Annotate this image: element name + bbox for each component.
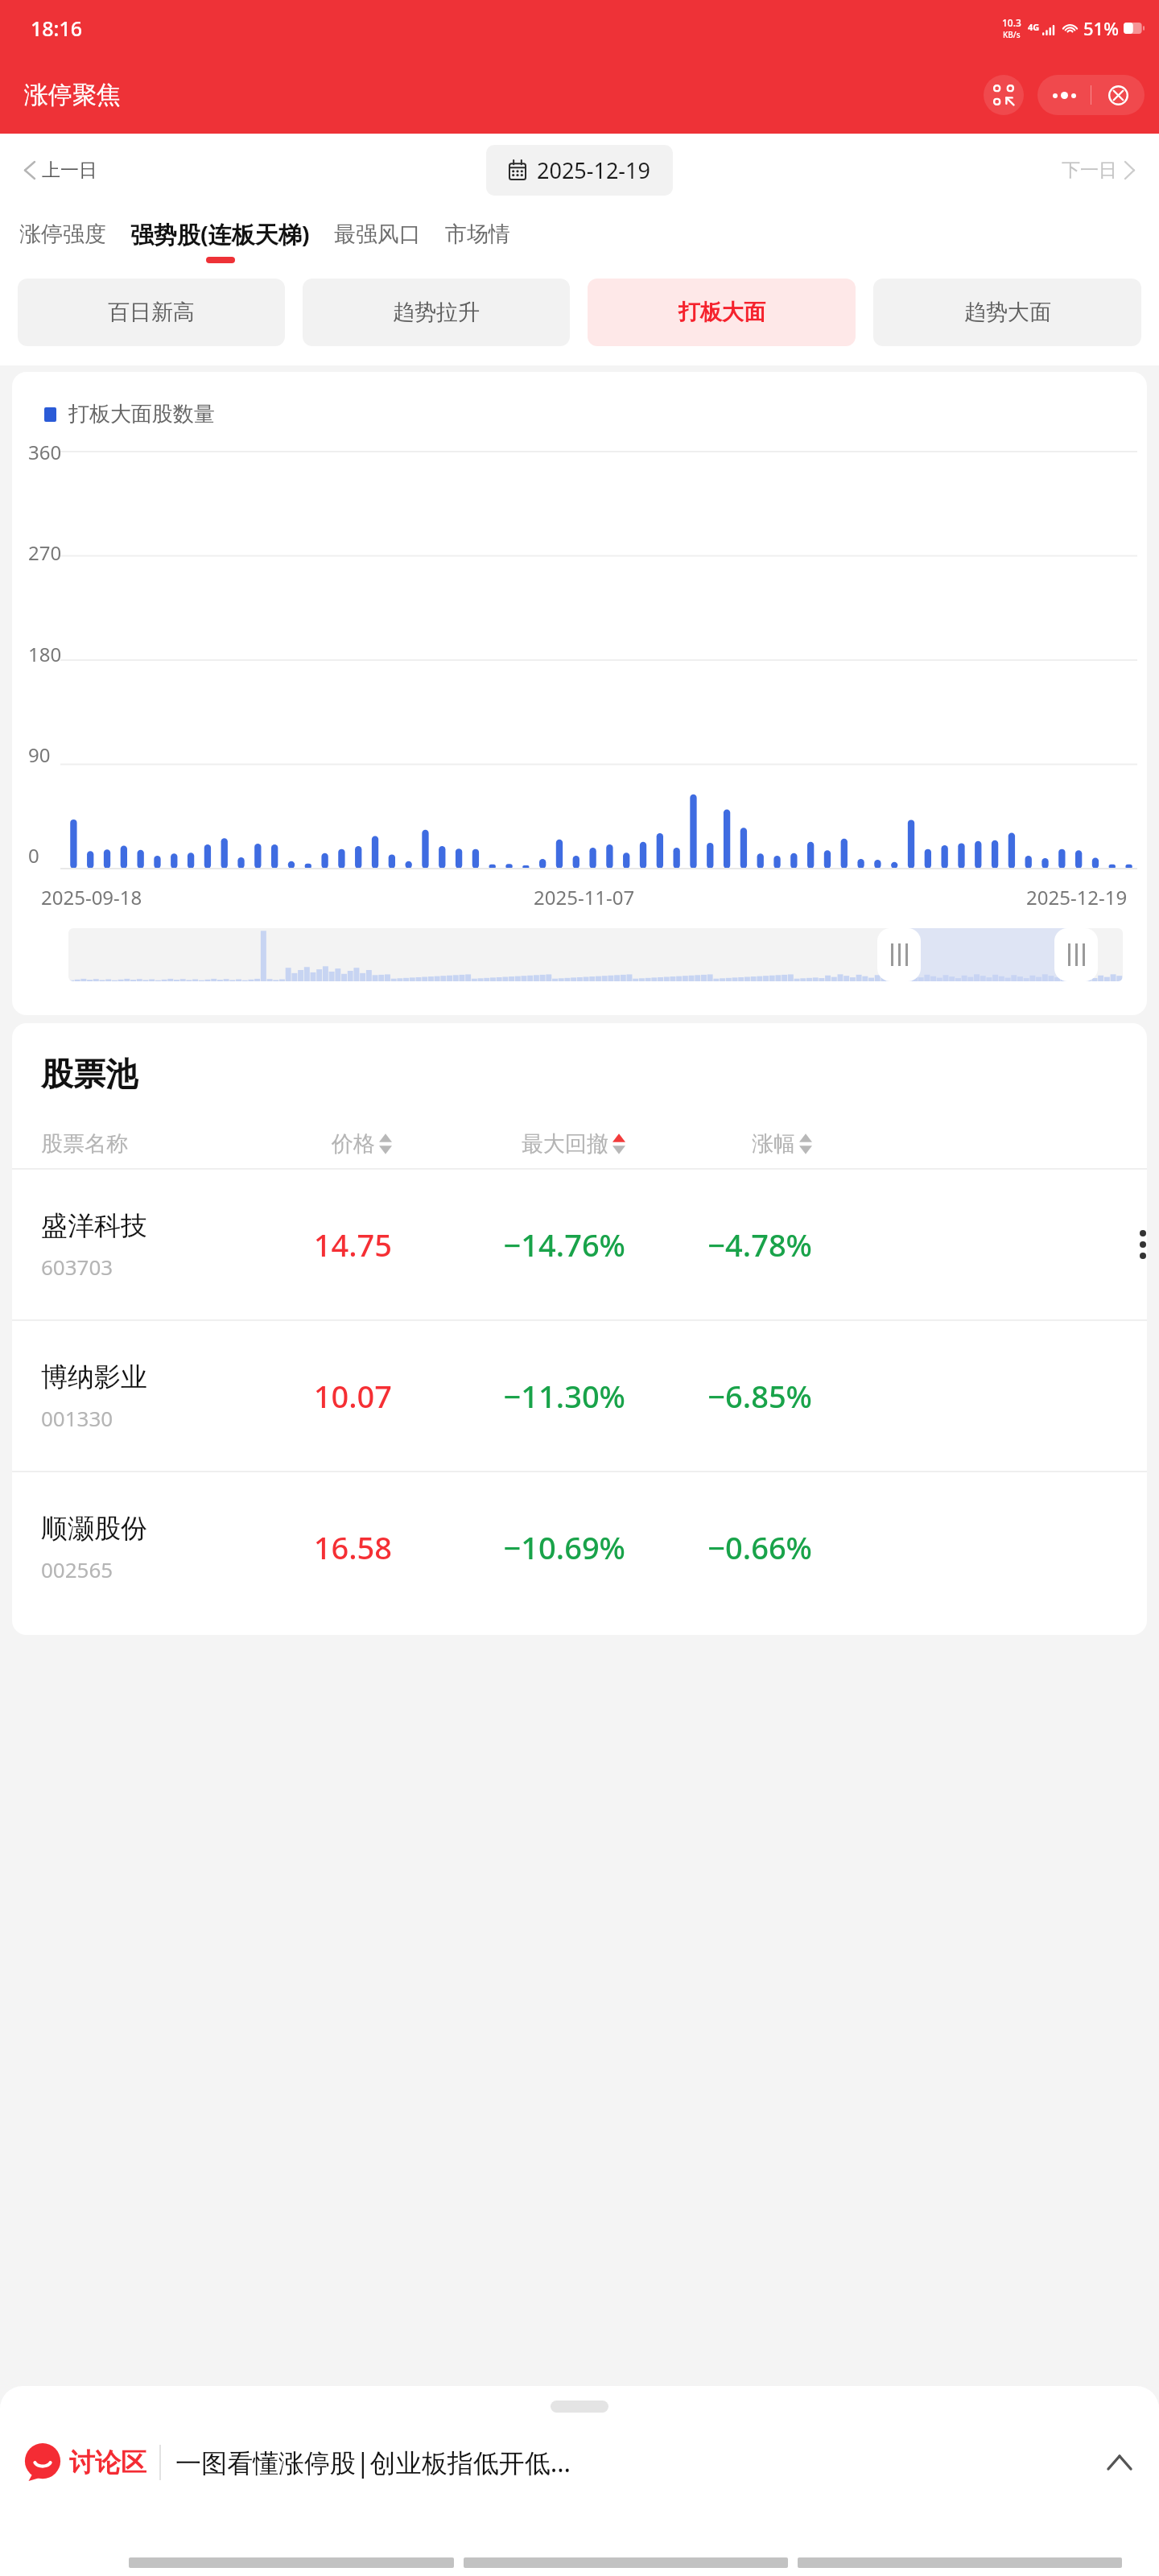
staticText: 涨停聚焦 [24,80,121,110]
staticText: 价格 [332,1130,375,1158]
staticText: 最大回撤 [522,1130,608,1158]
button[interactable]: 涨幅 [625,1130,812,1158]
button[interactable]: 打板大面 [588,279,856,346]
button[interactable]: 2025-12-19 [486,145,673,196]
button[interactable]: 最大回撤 [392,1130,625,1158]
staticText: −10.69% [392,1526,625,1568]
staticText: KB/s [1003,29,1021,40]
staticText: 盛洋科技 [41,1209,147,1243]
staticText: −11.30% [392,1375,625,1417]
staticText: 2025-12-19 [1026,884,1128,910]
staticText: 最强风口 [334,221,421,248]
button[interactable]: 百日新高 [18,279,285,346]
staticText: 顺灏股份 [41,1512,147,1546]
button[interactable]: 上一日 [18,152,104,188]
staticText: 趋势大面 [964,299,1051,326]
staticText: 博纳影业 [41,1360,147,1394]
button[interactable]: Drag handle [1054,928,1098,981]
staticText: 14.75 [220,1224,392,1265]
staticText: 18:16 [31,14,83,42]
button[interactable]: 盛洋科技 [12,1170,1147,1319]
staticText: 趋势拉升 [393,299,480,326]
staticText: 打板大面 [678,299,765,326]
button[interactable]: 强势股(连板天梯) [129,218,311,263]
staticText: 10.07 [220,1375,392,1417]
staticText: 2025-12-19 [537,155,650,185]
button[interactable]: Drag handle [877,928,921,981]
staticText: 股票名称 [41,1130,220,1158]
button[interactable]: 顺灏股份 [12,1472,1147,1622]
staticText: 10.3 [1002,16,1021,29]
button[interactable]: More [1140,1230,1146,1259]
staticText: 涨停强度 [19,221,106,248]
staticText: 涨幅 [752,1130,795,1158]
button[interactable]: 最强风口 [332,221,423,261]
button[interactable]: Range selector [68,928,1123,981]
button[interactable]: Mini program [984,75,1024,115]
staticText: 股票池 [41,1054,138,1094]
staticText: 270 [28,539,62,566]
button[interactable]: More options [1037,75,1091,115]
button[interactable]: 博纳影业 [12,1321,1147,1471]
staticText: 一图看懂涨停股|创业板指低开低… [175,2445,1091,2480]
staticText: 讨论区 [69,2446,146,2479]
staticText: 4G [1028,21,1040,33]
staticText: 0 [28,842,39,869]
staticText: −14.76% [392,1224,625,1265]
staticText: 强势股(连板天梯) [130,218,310,250]
staticText: 百日新高 [108,299,195,326]
staticText: 180 [28,641,62,667]
staticText: 001330 [41,1404,113,1432]
button[interactable]: 下一日 [1055,152,1141,188]
button[interactable]: 涨停强度 [18,221,108,261]
staticText: 上一日 [42,159,97,182]
staticText: −4.78% [625,1224,812,1265]
staticText: 16.58 [220,1526,392,1568]
staticText: 603703 [41,1253,113,1281]
staticText: 打板大面股数量 [68,401,215,427]
staticText: 下一日 [1062,159,1117,182]
button[interactable]: Close [1091,75,1145,115]
button[interactable]: 价格 [220,1130,392,1158]
staticText: 002565 [41,1555,113,1583]
button[interactable]: 市场情 [443,221,512,261]
staticText: 360 [28,439,62,465]
staticText: −0.66% [625,1526,812,1568]
staticText: 2025-11-07 [534,884,635,910]
staticText: 2025-09-18 [41,884,142,910]
staticText: −6.85% [625,1375,812,1417]
staticText: 51% [1083,16,1119,40]
button[interactable]: Expand [1098,2441,1141,2484]
staticText: 市场情 [445,221,510,248]
button[interactable]: 趋势拉升 [303,279,570,346]
button[interactable]: 讨论区 [24,2444,146,2481]
button[interactable]: 趋势大面 [873,279,1141,346]
staticText: 90 [28,741,51,768]
